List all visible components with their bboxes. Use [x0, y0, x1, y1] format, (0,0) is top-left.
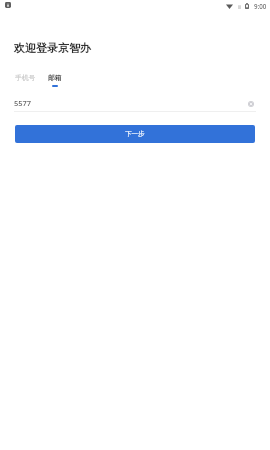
staticText: 5577 [14, 98, 32, 108]
staticText: 手机号 [15, 73, 36, 82]
button[interactable]: 邮箱 [48, 73, 62, 87]
staticText: 下一步 [125, 130, 145, 138]
staticText: 9:00 [254, 2, 267, 10]
button[interactable]: 手机号 [15, 73, 36, 87]
button[interactable]: 下一步 [15, 125, 255, 143]
button[interactable]: 5577 [14, 95, 242, 111]
button[interactable]: Clear text [245, 98, 257, 110]
staticText: 邮箱 [48, 73, 62, 82]
staticText: 欢迎登录京智办 [14, 41, 91, 55]
